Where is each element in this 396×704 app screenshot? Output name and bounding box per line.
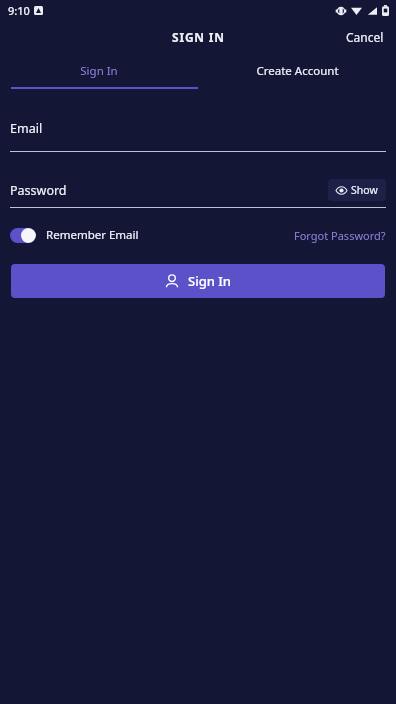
staticText: Remember Email	[46, 227, 139, 243]
staticText: 9:10	[8, 3, 30, 18]
button[interactable]: Show	[328, 179, 386, 201]
staticText: Show	[351, 183, 378, 197]
staticText: Cancel	[346, 29, 384, 45]
staticText: Create Account	[256, 63, 339, 79]
staticText: Forgot Password?	[294, 228, 386, 243]
staticText: Password	[10, 182, 67, 199]
button[interactable]: Remember Email	[10, 227, 139, 243]
button[interactable]: Forgot Password?	[294, 228, 386, 243]
button[interactable]: Sign In	[0, 54, 198, 87]
button[interactable]: Cancel	[334, 23, 396, 51]
button[interactable]: Sign In	[11, 264, 385, 298]
staticText: Sign In	[188, 272, 232, 290]
staticText: Email	[10, 120, 43, 137]
staticText: Sign In	[80, 63, 118, 79]
button[interactable]: Create Account	[198, 54, 396, 87]
staticText: SIGN IN	[172, 29, 225, 45]
